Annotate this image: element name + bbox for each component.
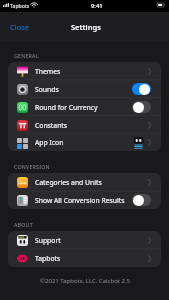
button[interactable]: Round for Currency <box>8 98 161 116</box>
button[interactable]: Constants <box>8 116 161 134</box>
staticText: Constants <box>35 121 68 130</box>
button[interactable]: Close <box>8 19 32 35</box>
staticText: Themes <box>35 67 61 76</box>
staticText: Categories and Units <box>35 178 102 187</box>
other: Open Tapbots <box>148 255 151 262</box>
staticText: Sounds <box>35 85 59 94</box>
staticText: GENERAL <box>14 52 39 59</box>
other: Open Categories and Units <box>148 179 151 186</box>
button[interactable]: Categories and Units <box>8 173 161 191</box>
button[interactable]: Themes <box>8 62 161 80</box>
staticText: Show All Conversion Results <box>35 196 125 205</box>
button[interactable]: Show All Conversion Results <box>8 191 161 209</box>
other: Open Constants <box>148 122 151 129</box>
button[interactable]: Off <box>132 101 151 113</box>
button[interactable]: Off <box>132 194 151 206</box>
staticText: Close <box>10 22 30 32</box>
staticText: Tapbots <box>35 254 61 263</box>
button[interactable]: Support <box>8 231 161 249</box>
staticText: App Icon <box>35 138 64 147</box>
other: Open Support <box>148 237 151 244</box>
button[interactable]: App Icon <box>8 134 161 151</box>
staticText: ABOUT <box>14 221 33 228</box>
button[interactable]: Tapbots <box>8 249 161 267</box>
button[interactable]: On <box>132 83 151 95</box>
other: Open Themes <box>148 68 151 75</box>
staticText: Tapbots <box>10 2 30 9</box>
staticText: 9:41 <box>91 2 103 10</box>
staticText: Settings <box>71 22 101 32</box>
staticText: Round for Currency <box>35 103 98 112</box>
staticText: CONVERSION <box>14 163 50 170</box>
staticText: Support <box>35 236 61 245</box>
staticText: ©2021 Tapbots, LLC. Calcbot 2.5 <box>40 277 130 285</box>
button[interactable]: Sounds <box>8 80 161 98</box>
other: Open App Icon <box>148 139 151 146</box>
